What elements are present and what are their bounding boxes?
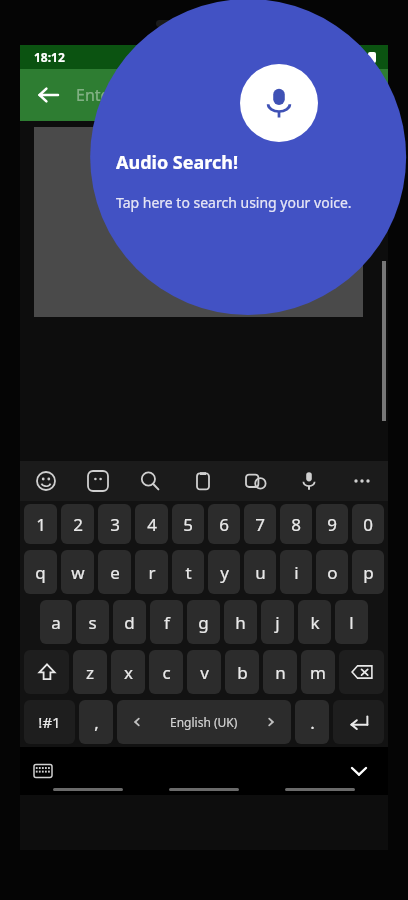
staticText: p bbox=[363, 561, 374, 584]
button[interactable]: 5 bbox=[172, 504, 204, 544]
button[interactable]: 6 bbox=[208, 504, 240, 544]
staticText: s bbox=[88, 611, 97, 634]
staticText: e bbox=[110, 561, 120, 584]
staticText: l bbox=[349, 611, 354, 634]
staticText: 3 bbox=[110, 513, 120, 536]
button[interactable]: b bbox=[225, 650, 259, 694]
button[interactable]: Backspace bbox=[339, 650, 384, 694]
button[interactable]: 9 bbox=[316, 504, 348, 544]
button[interactable]: d bbox=[113, 600, 146, 644]
staticText: b bbox=[237, 661, 248, 684]
staticText: d bbox=[124, 611, 135, 634]
button[interactable]: !#1 bbox=[24, 700, 75, 744]
button[interactable]: x bbox=[111, 650, 145, 694]
button[interactable]: h bbox=[224, 600, 257, 644]
staticText: 9 bbox=[327, 513, 337, 536]
staticText: c bbox=[162, 661, 171, 684]
button[interactable]: 7 bbox=[244, 504, 276, 544]
button[interactable]: v bbox=[187, 650, 221, 694]
button[interactable]: More bbox=[335, 461, 388, 501]
button[interactable]: Search bbox=[124, 461, 176, 501]
button[interactable]: 8 bbox=[280, 504, 312, 544]
button[interactable]: j bbox=[261, 600, 294, 644]
button[interactable]: Space, English (UK) bbox=[117, 700, 291, 744]
button[interactable]: Audio search bbox=[240, 64, 318, 142]
staticText: f bbox=[164, 611, 170, 634]
staticText: z bbox=[86, 661, 94, 684]
staticText: u bbox=[255, 561, 266, 584]
button[interactable]: 3 bbox=[98, 504, 131, 544]
staticText: !#1 bbox=[38, 712, 61, 732]
staticText: a bbox=[51, 611, 61, 634]
button[interactable]: GIF bbox=[229, 461, 282, 501]
button[interactable]: l bbox=[335, 600, 368, 644]
staticText: Audio Search! bbox=[116, 150, 239, 175]
button[interactable]: u bbox=[244, 550, 276, 594]
button[interactable]: . bbox=[295, 700, 329, 744]
button[interactable]: , bbox=[79, 700, 113, 744]
button[interactable]: s bbox=[76, 600, 109, 644]
staticText: o bbox=[327, 561, 338, 584]
button[interactable]: n bbox=[263, 650, 297, 694]
button[interactable]: c bbox=[149, 650, 183, 694]
staticText: 4 bbox=[147, 513, 157, 536]
button[interactable]: Enter bbox=[333, 700, 384, 744]
staticText: Enter software bbox=[76, 84, 186, 106]
staticText: k bbox=[310, 611, 320, 634]
button[interactable]: q bbox=[24, 550, 57, 594]
button[interactable]: 1 bbox=[24, 504, 57, 544]
button[interactable]: Switch keyboard bbox=[26, 754, 60, 788]
button[interactable]: 4 bbox=[135, 504, 168, 544]
button[interactable]: Search bbox=[298, 73, 342, 117]
button[interactable]: a bbox=[40, 600, 72, 644]
staticText: q bbox=[35, 561, 46, 584]
button[interactable]: Hide keyboard bbox=[342, 754, 376, 788]
staticText: 8 bbox=[291, 513, 301, 536]
staticText: 18:12 bbox=[34, 49, 65, 65]
staticText: v bbox=[200, 661, 209, 684]
staticText: English (UK) bbox=[170, 714, 238, 730]
button[interactable]: Emoji bbox=[20, 461, 72, 501]
staticText: t bbox=[185, 561, 192, 584]
staticText: h bbox=[235, 611, 246, 634]
staticText: m bbox=[310, 661, 326, 684]
staticText: 5 bbox=[183, 513, 193, 536]
staticText: 2 bbox=[73, 513, 83, 536]
button[interactable]: k bbox=[298, 600, 331, 644]
staticText: w bbox=[71, 561, 85, 584]
staticText: x bbox=[124, 661, 133, 684]
button[interactable]: i bbox=[280, 550, 312, 594]
button[interactable]: o bbox=[316, 550, 348, 594]
staticText: i bbox=[294, 561, 299, 584]
button[interactable]: r bbox=[135, 550, 168, 594]
button[interactable]: p bbox=[352, 550, 384, 594]
button[interactable]: z bbox=[73, 650, 107, 694]
staticText: g bbox=[198, 611, 209, 634]
button[interactable]: t bbox=[172, 550, 204, 594]
button[interactable]: Clipboard bbox=[176, 461, 229, 501]
button[interactable]: f bbox=[150, 600, 183, 644]
button[interactable]: Voice input bbox=[282, 461, 335, 501]
staticText: y bbox=[220, 561, 229, 584]
button[interactable]: 0 bbox=[352, 504, 384, 544]
staticText: 1 bbox=[36, 513, 46, 536]
staticText: Tap here to search using your voice. bbox=[116, 193, 352, 212]
button[interactable]: Stickers bbox=[72, 461, 124, 501]
button[interactable]: 2 bbox=[61, 504, 94, 544]
staticText: 6 bbox=[219, 513, 229, 536]
staticText: 7 bbox=[255, 513, 265, 536]
button[interactable]: Back bbox=[26, 73, 70, 117]
staticText: 79% bbox=[341, 49, 366, 65]
button[interactable]: w bbox=[61, 550, 94, 594]
staticText: r bbox=[148, 561, 156, 584]
button[interactable]: g bbox=[187, 600, 220, 644]
button[interactable]: e bbox=[98, 550, 131, 594]
button[interactable]: Shift bbox=[24, 650, 69, 694]
staticText: j bbox=[275, 611, 280, 634]
staticText: , bbox=[94, 711, 99, 734]
staticText: . bbox=[310, 711, 315, 734]
button[interactable]: m bbox=[301, 650, 335, 694]
button[interactable]: y bbox=[208, 550, 240, 594]
button[interactable]: Help bbox=[340, 73, 384, 117]
staticText: 0 bbox=[363, 513, 373, 536]
